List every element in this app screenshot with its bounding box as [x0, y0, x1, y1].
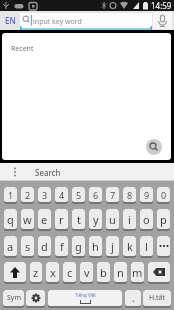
staticText: y — [93, 212, 99, 227]
button[interactable]: 2 — [21, 187, 34, 202]
staticText: Sym — [7, 293, 21, 303]
button[interactable]: 7 — [106, 187, 119, 202]
staticText: 8 — [127, 189, 133, 201]
button[interactable]: H.tất — [143, 290, 171, 306]
staticText: v — [84, 265, 90, 280]
staticText: 6 — [93, 189, 99, 201]
button[interactable]: 5 — [72, 187, 85, 202]
staticText: t — [77, 212, 81, 227]
button[interactable]: input key word — [20, 13, 152, 30]
button[interactable]: 4 — [55, 187, 68, 202]
staticText: 3 — [42, 189, 48, 201]
button[interactable] — [148, 262, 170, 282]
button[interactable]: Search — [35, 167, 61, 178]
button[interactable] — [26, 290, 45, 306]
staticText: 9 — [144, 189, 150, 201]
button[interactable]: c — [63, 262, 76, 282]
button[interactable]: a — [4, 236, 17, 256]
staticText: s — [25, 239, 31, 254]
button[interactable]: n — [114, 262, 127, 282]
button[interactable]: t — [72, 209, 85, 229]
button[interactable]: m — [131, 262, 144, 282]
staticText: 7 — [110, 189, 116, 201]
staticText: j — [111, 239, 114, 254]
staticText: e — [41, 212, 48, 227]
staticText: 1 — [8, 189, 14, 201]
staticText: x — [50, 265, 56, 280]
staticText: 0 — [161, 189, 167, 201]
staticText: u — [109, 212, 116, 227]
button[interactable]: o — [140, 209, 153, 229]
staticText: input key word — [33, 17, 82, 27]
button[interactable]: k — [123, 236, 136, 256]
staticText: o — [143, 212, 150, 227]
staticText: a — [7, 239, 14, 254]
staticText: w — [23, 212, 32, 227]
button[interactable]: 9 — [140, 187, 153, 202]
button[interactable]: l — [140, 236, 153, 256]
button[interactable]: j — [106, 236, 119, 256]
button[interactable]: h — [89, 236, 102, 256]
button[interactable]: w — [21, 209, 34, 229]
button[interactable]: s — [21, 236, 34, 256]
button[interactable]: 1 — [4, 187, 17, 202]
button[interactable]: g — [72, 236, 85, 256]
staticText: c — [67, 265, 73, 280]
button[interactable]: y — [89, 209, 102, 229]
button[interactable] — [157, 236, 170, 256]
staticText: i — [128, 212, 131, 227]
staticText: Recent — [11, 44, 34, 54]
button[interactable] — [153, 12, 172, 29]
button[interactable]: q — [4, 209, 17, 229]
staticText: Search — [35, 167, 61, 178]
button[interactable]: 3 — [38, 187, 51, 202]
staticText: h — [92, 239, 99, 254]
staticText: 14:59 — [151, 0, 172, 11]
button[interactable]: v — [80, 262, 93, 282]
button[interactable]: i — [123, 209, 136, 229]
button[interactable]: Sym — [3, 290, 24, 306]
staticText: . — [132, 291, 135, 305]
button[interactable]: u — [106, 209, 119, 229]
button[interactable] — [4, 262, 26, 282]
staticText: Tiếng Việt — [75, 292, 96, 298]
staticText: k — [127, 239, 133, 254]
button[interactable]: x — [46, 262, 59, 282]
button[interactable]: z — [30, 262, 42, 282]
staticText: z — [33, 265, 39, 280]
button[interactable]: p — [157, 209, 170, 229]
staticText: b — [100, 265, 107, 280]
staticText: l — [145, 239, 148, 254]
button[interactable]: f — [55, 236, 68, 256]
staticText: d — [41, 239, 48, 254]
button[interactable]: 6 — [89, 187, 102, 202]
staticText: H.tất — [149, 293, 166, 303]
button[interactable] — [146, 139, 162, 155]
staticText: f — [60, 239, 64, 254]
staticText: g — [75, 239, 82, 254]
staticText: 2 — [25, 189, 31, 201]
button[interactable]: 0 — [157, 187, 170, 202]
staticText: p — [160, 212, 167, 227]
button[interactable]: EN — [0, 11, 20, 30]
staticText: q — [7, 212, 14, 227]
staticText: m — [132, 265, 143, 280]
button[interactable]: Tiếng Việt — [48, 290, 122, 306]
staticText: 5 — [76, 189, 82, 201]
staticText: 4 — [59, 189, 65, 201]
staticText: EN — [5, 15, 16, 26]
button[interactable]: b — [97, 262, 110, 282]
staticText: r — [59, 212, 64, 227]
button[interactable]: d — [38, 236, 51, 256]
button[interactable]: . — [125, 290, 141, 306]
button[interactable]: e — [38, 209, 51, 229]
button[interactable]: r — [55, 209, 68, 229]
staticText: n — [117, 265, 124, 280]
button[interactable]: 8 — [123, 187, 136, 202]
